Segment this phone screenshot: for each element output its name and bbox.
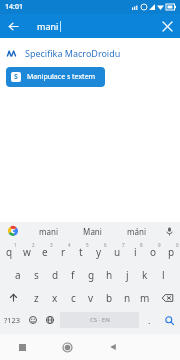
staticText: p [168, 245, 175, 259]
staticText: 3 [50, 242, 53, 248]
staticText: m [140, 291, 150, 305]
staticText: mani [39, 226, 58, 237]
button[interactable]: v [82, 286, 100, 309]
button[interactable]: q [0, 240, 18, 263]
staticText: x [52, 291, 58, 305]
button[interactable]: c [64, 286, 82, 309]
button[interactable]: Backspace [154, 286, 180, 309]
staticText: u [114, 245, 121, 259]
button[interactable]: o [144, 240, 162, 263]
staticText: Manipulace s textem [27, 72, 96, 82]
staticText: a [15, 268, 21, 282]
button[interactable]: a [8, 263, 27, 286]
button[interactable]: e [36, 240, 54, 263]
button[interactable]: l [154, 263, 172, 286]
button[interactable]: g [82, 263, 100, 286]
button[interactable]: p [162, 240, 180, 263]
button[interactable]: u [108, 240, 126, 263]
staticText: n [124, 291, 131, 305]
staticText: w [23, 245, 31, 259]
staticText: 14:01 [5, 2, 23, 12]
staticText: y [96, 245, 102, 259]
button[interactable]: d [46, 263, 64, 286]
button[interactable]: Voice input [158, 222, 180, 240]
staticText: j [126, 268, 129, 282]
button[interactable]: x [46, 286, 64, 309]
button[interactable]: Change language [41, 309, 58, 331]
staticText: . [148, 314, 151, 326]
staticText: b [106, 291, 113, 305]
button[interactable]: . [141, 309, 158, 331]
staticText: máni [127, 226, 146, 237]
staticText: f [71, 268, 75, 282]
button[interactable]: i [126, 240, 144, 263]
button[interactable]: mani [26, 222, 70, 240]
staticText: 4 [68, 242, 71, 248]
button[interactable]: n [118, 286, 136, 309]
staticText: c [71, 291, 76, 305]
button[interactable]: k [136, 263, 154, 286]
button[interactable]: f [64, 263, 82, 286]
staticText: l [162, 268, 165, 282]
staticText: e [42, 245, 48, 259]
button[interactable]: Clear [157, 16, 177, 36]
button[interactable]: S [6, 67, 105, 87]
button[interactable]: w [18, 240, 36, 263]
staticText: g [88, 268, 95, 282]
staticText: 6 [104, 242, 107, 248]
staticText: r [61, 245, 66, 259]
staticText: t [79, 245, 83, 259]
staticText: o [150, 245, 157, 259]
button[interactable]: CS · EN [60, 312, 139, 328]
staticText: 9 [158, 242, 161, 248]
button[interactable]: s [27, 263, 46, 286]
button[interactable]: h [100, 263, 118, 286]
staticText: mani [37, 20, 59, 32]
staticText: 1 [14, 242, 17, 248]
button[interactable]: j [118, 263, 136, 286]
button[interactable]: b [100, 286, 118, 309]
staticText: ?123 [4, 315, 21, 325]
button[interactable]: Shift [0, 286, 27, 309]
button[interactable]: ?123 [0, 309, 24, 331]
button[interactable]: t [72, 240, 90, 263]
staticText: S [14, 72, 18, 82]
staticText: CS · EN [90, 316, 110, 324]
staticText: i [134, 245, 137, 259]
staticText: Specifika MacroDroidu [25, 47, 121, 59]
button[interactable]: y [90, 240, 108, 263]
button[interactable]: Emoji [24, 309, 41, 331]
button[interactable]: Back [3, 16, 23, 36]
staticText: s [34, 268, 39, 282]
button[interactable]: Recents [0, 334, 45, 360]
staticText: h [106, 268, 113, 282]
staticText: 8 [140, 242, 143, 248]
button[interactable]: Google [0, 222, 26, 240]
button[interactable]: Home [45, 334, 90, 360]
staticText: Mani [83, 226, 102, 237]
button[interactable]: Search [158, 309, 180, 331]
button[interactable]: Specifika MacroDroidu [7, 47, 180, 59]
staticText: q [6, 245, 13, 259]
button[interactable]: máni [114, 222, 158, 240]
button[interactable]: Back [90, 334, 135, 360]
button[interactable]: Mani [70, 222, 114, 240]
staticText: d [52, 268, 59, 282]
button[interactable]: r [54, 240, 72, 263]
staticText: 0 [176, 242, 179, 248]
staticText: 5 [86, 242, 89, 248]
staticText: z [34, 291, 39, 305]
staticText: v [88, 291, 94, 305]
staticText: k [142, 268, 148, 282]
button[interactable]: m [136, 286, 154, 309]
button[interactable]: z [27, 286, 46, 309]
staticText: 7 [122, 242, 125, 248]
staticText: 2 [32, 242, 35, 248]
